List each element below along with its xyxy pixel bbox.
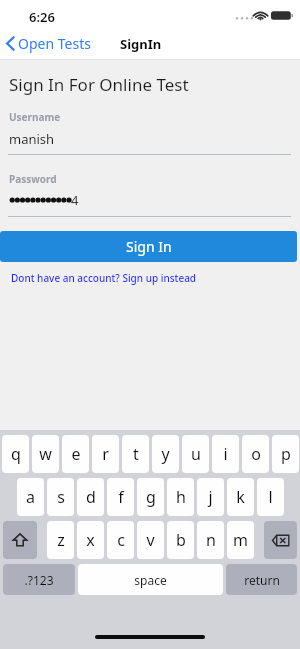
staticText: Sign In For Online Test: [9, 73, 189, 96]
button[interactable]: q: [2, 435, 29, 473]
staticText: x: [86, 529, 95, 551]
button[interactable]: .?123: [3, 564, 75, 595]
button[interactable]: f: [107, 478, 134, 516]
button[interactable]: return: [226, 564, 297, 595]
staticText: Open Tests: [18, 34, 91, 53]
staticText: q: [11, 443, 21, 465]
button[interactable]: v: [137, 521, 164, 559]
staticText: Username: [9, 110, 61, 124]
staticText: return: [244, 572, 280, 588]
button[interactable]: l: [257, 478, 284, 516]
staticText: space: [134, 572, 167, 588]
button[interactable]: h: [167, 478, 194, 516]
staticText: Password: [9, 172, 57, 186]
button[interactable]: p: [272, 435, 299, 473]
button[interactable]: g: [137, 478, 164, 516]
staticText: p: [281, 443, 291, 465]
staticText: a: [26, 486, 35, 508]
staticText: m: [233, 529, 248, 551]
staticText: b: [176, 529, 186, 551]
staticText: manish: [9, 130, 55, 148]
button[interactable]: n: [197, 521, 224, 559]
staticText: e: [71, 443, 81, 465]
button[interactable]: Dont have an account? Sign up instead: [0, 270, 203, 287]
button[interactable]: k: [227, 478, 254, 516]
staticText: .?123: [24, 572, 54, 588]
staticText: y: [161, 443, 170, 465]
staticText: z: [57, 529, 65, 551]
button[interactable]: d: [77, 478, 104, 516]
staticText: f: [118, 486, 124, 508]
button[interactable]: space: [78, 564, 223, 595]
button[interactable]: s: [47, 478, 74, 516]
staticText: t: [133, 443, 139, 465]
staticText: w: [39, 443, 52, 465]
staticText: j: [208, 486, 213, 508]
button[interactable]: y: [152, 435, 179, 473]
button[interactable]: o: [242, 435, 269, 473]
button[interactable]: Backspace: [264, 521, 297, 559]
staticText: i: [223, 443, 228, 465]
button[interactable]: m: [227, 521, 254, 559]
button[interactable]: c: [107, 521, 134, 559]
button[interactable]: e: [62, 435, 89, 473]
staticText: n: [206, 529, 216, 551]
staticText: Dont have an account? Sign up instead: [11, 271, 197, 285]
button[interactable]: a: [17, 478, 44, 516]
staticText: s: [57, 486, 65, 508]
staticText: k: [236, 486, 245, 508]
button[interactable]: z: [47, 521, 74, 559]
staticText: o: [251, 443, 261, 465]
staticText: h: [176, 486, 186, 508]
staticText: l: [268, 486, 273, 508]
button[interactable]: j: [197, 478, 224, 516]
button[interactable]: t: [122, 435, 149, 473]
staticText: u: [191, 443, 201, 465]
button[interactable]: Shift: [3, 521, 37, 559]
staticText: d: [86, 486, 96, 508]
staticText: c: [117, 529, 125, 551]
button[interactable]: i: [212, 435, 239, 473]
button[interactable]: r: [92, 435, 119, 473]
staticText: g: [146, 486, 156, 508]
button[interactable]: x: [77, 521, 104, 559]
staticText: 4: [71, 191, 79, 209]
button[interactable]: u: [182, 435, 209, 473]
staticText: 6:26: [29, 8, 55, 26]
staticText: Sign In: [126, 237, 172, 256]
button[interactable]: w: [32, 435, 59, 473]
button[interactable]: Sign In: [0, 231, 297, 262]
button[interactable]: Open Tests: [0, 32, 99, 55]
button[interactable]: b: [167, 521, 194, 559]
staticText: r: [102, 443, 109, 465]
staticText: SignIn: [120, 35, 162, 53]
staticText: v: [146, 529, 155, 551]
